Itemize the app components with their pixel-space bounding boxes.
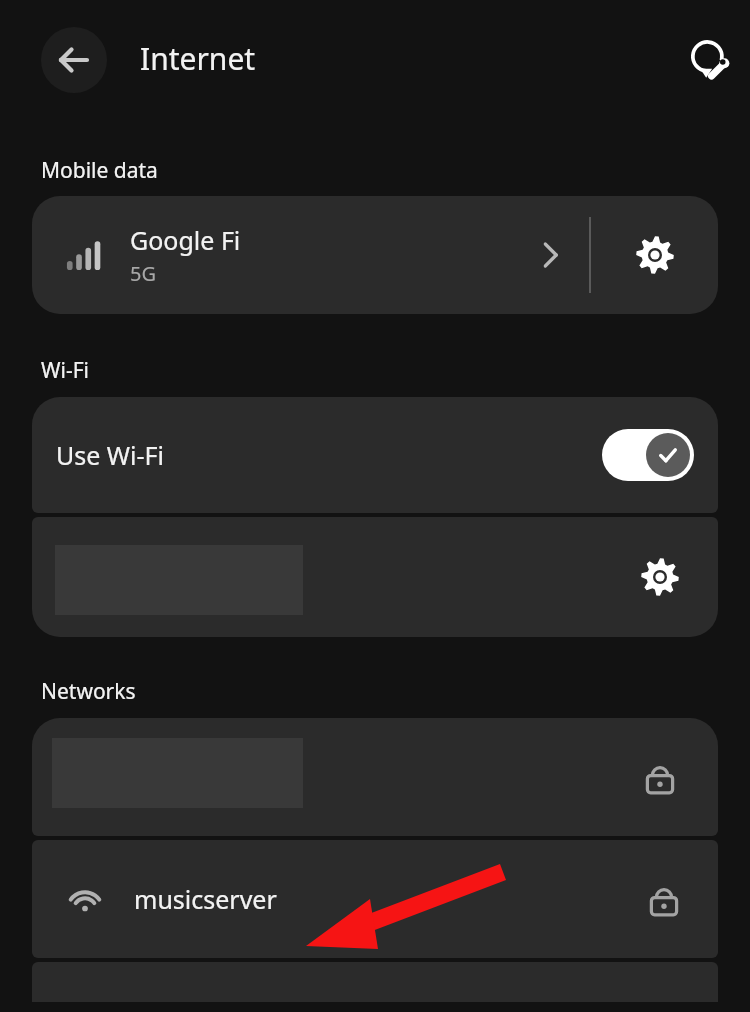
button[interactable]: Network settings — [32, 517, 718, 637]
staticText: Use Wi-Fi — [56, 438, 165, 472]
button[interactable]: Google Fi — [32, 196, 589, 314]
button[interactable] — [32, 718, 718, 836]
staticText: 5G — [130, 260, 156, 287]
staticText: Mobile data — [41, 156, 158, 185]
staticText: Internet — [140, 38, 256, 79]
staticText: Google Fi — [130, 223, 241, 257]
button[interactable]: Back — [41, 27, 107, 93]
staticText: musicserver — [134, 882, 277, 916]
button[interactable]: Network settings — [632, 549, 688, 605]
button[interactable]: Use Wi-Fi — [32, 397, 718, 513]
button[interactable]: musicserver — [32, 840, 718, 958]
staticText: Wi-Fi — [41, 356, 90, 385]
button[interactable]: Fix connectivity — [680, 30, 740, 90]
staticText: Networks — [41, 677, 136, 706]
button[interactable]: Mobile network settings — [591, 196, 718, 314]
